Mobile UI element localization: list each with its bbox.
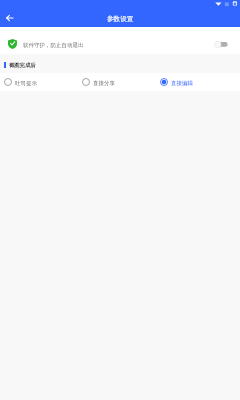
staticText: 直接分享: [93, 80, 115, 87]
button[interactable]: Back: [2, 11, 16, 25]
button[interactable]: 吐司提示: [0, 73, 78, 91]
staticText: 吐司提示: [15, 80, 37, 87]
staticText: 软件守护，防止自动退出: [23, 42, 84, 49]
button[interactable]: Software guard switch: [213, 39, 231, 49]
button[interactable]: 直接分享: [78, 73, 156, 91]
button[interactable]: 直接编辑: [156, 73, 234, 91]
button[interactable]: 软件守护，防止自动退出: [0, 27, 240, 54]
staticText: 截图完成后: [9, 62, 36, 69]
staticText: 直接编辑: [171, 80, 193, 87]
staticText: 参数设置: [107, 15, 134, 23]
